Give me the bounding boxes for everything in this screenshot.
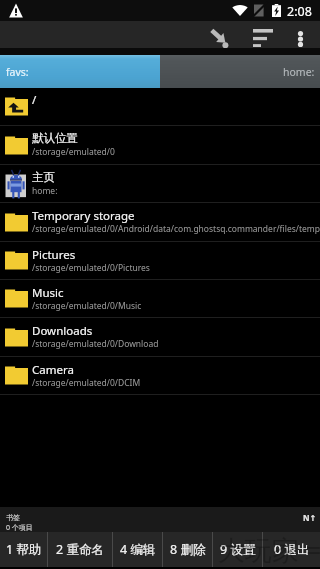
staticText: Temporary storage [32, 208, 135, 224]
button[interactable]: home: [160, 55, 320, 88]
button[interactable]: 1 帮助 [0, 532, 47, 567]
button[interactable]: Paste here [199, 24, 239, 51]
button[interactable]: 主页 [0, 165, 320, 203]
staticText: home: [283, 65, 315, 79]
staticText: /storage/emulated/0 [32, 146, 115, 158]
button[interactable]: Temporary storage [0, 203, 320, 242]
staticText: /storage/emulated/0/Pictures [32, 262, 150, 274]
button[interactable]: Sort [243, 24, 283, 51]
staticText: 0 退出 [274, 541, 310, 558]
staticText: 9 设置 [220, 541, 256, 558]
button[interactable]: 4 编辑 [113, 532, 162, 567]
staticText: 1 帮助 [6, 541, 42, 558]
staticText: /storage/emulated/0/Download [32, 338, 159, 350]
staticText: Pictures [32, 247, 76, 263]
staticText: 4 编辑 [120, 541, 156, 558]
staticText: 8 删除 [170, 541, 206, 558]
staticText: favs: [6, 65, 29, 79]
staticText: N↑ [303, 512, 317, 523]
staticText: Camera [32, 362, 74, 378]
button[interactable]: Pictures [0, 242, 320, 280]
button[interactable]: Downloads [0, 318, 320, 357]
staticText: /storage/emulated/0/Music [32, 300, 142, 312]
staticText: 主页 [32, 170, 55, 184]
button[interactable]: favs: [0, 55, 160, 88]
staticText: 2 重命名 [56, 541, 104, 558]
staticText: Downloads [32, 323, 93, 339]
button[interactable]: More options [286, 23, 314, 50]
button[interactable]: 9 设置 [213, 532, 262, 567]
staticText: Music [32, 285, 64, 301]
staticText: /storage/emulated/0/Android/data/com.gho… [32, 223, 320, 235]
button[interactable]: 0 退出 [263, 532, 320, 567]
button[interactable]: 默认位置 [0, 126, 320, 165]
staticText: / [32, 92, 37, 108]
staticText: 书签 [6, 513, 20, 522]
button[interactable]: 2 重命名 [48, 532, 112, 567]
staticText: home: [32, 185, 58, 197]
button[interactable]: / [0, 88, 320, 126]
staticText: 默认位置 [32, 131, 78, 145]
staticText: 2:08 [287, 3, 312, 20]
button[interactable]: Camera [0, 357, 320, 395]
button[interactable]: 8 删除 [163, 532, 212, 567]
staticText: /storage/emulated/0/DCIM [32, 377, 141, 389]
staticText: 0 个项目 [6, 523, 33, 533]
staticText: 大玩家 = [218, 531, 320, 568]
button[interactable]: Music [0, 280, 320, 318]
